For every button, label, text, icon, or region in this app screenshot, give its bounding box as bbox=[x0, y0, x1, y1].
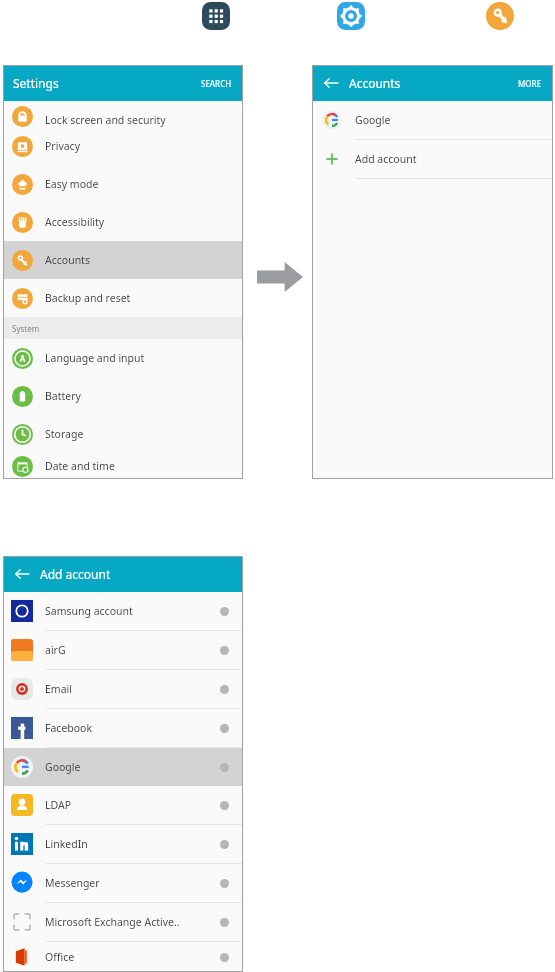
staticText: System bbox=[12, 323, 40, 334]
button[interactable]: airG bbox=[3, 631, 243, 670]
staticText: Samsung account bbox=[45, 604, 214, 618]
staticText: Storage bbox=[45, 427, 84, 441]
staticText: Lock screen and security bbox=[45, 113, 166, 127]
button[interactable]: Battery bbox=[3, 377, 243, 415]
staticText: Accessibility bbox=[45, 215, 105, 229]
button[interactable]: Email bbox=[3, 670, 243, 709]
button[interactable]: Apps bbox=[202, 2, 230, 30]
button[interactable]: Settings bbox=[337, 2, 365, 30]
button[interactable]: Accounts bbox=[3, 241, 243, 279]
staticText: LDAP bbox=[45, 798, 214, 812]
button[interactable]: Accounts bbox=[486, 2, 514, 30]
staticText: SEARCH bbox=[201, 78, 232, 89]
staticText: Privacy bbox=[45, 139, 81, 153]
button[interactable]: LinkedIn bbox=[3, 825, 243, 864]
staticText: Accounts bbox=[349, 75, 401, 91]
staticText: Date and time bbox=[45, 459, 115, 473]
staticText: MORE bbox=[518, 78, 542, 89]
staticText: Backup and reset bbox=[45, 291, 131, 305]
button[interactable]: Google bbox=[3, 748, 243, 786]
staticText: Settings bbox=[13, 75, 59, 91]
staticText: Microsoft Exchange Active.. bbox=[45, 915, 214, 929]
button[interactable]: LDAP bbox=[3, 786, 243, 825]
staticText: Accounts bbox=[45, 253, 90, 267]
staticText: Office bbox=[45, 950, 214, 964]
staticText: Easy mode bbox=[45, 177, 99, 191]
button[interactable]: Lock screen and security bbox=[3, 101, 243, 127]
staticText: Messenger bbox=[45, 876, 214, 890]
button[interactable]: Back bbox=[322, 74, 340, 92]
button[interactable]: Language and input bbox=[3, 339, 243, 377]
button[interactable]: Add account bbox=[312, 140, 553, 179]
staticText: Email bbox=[45, 682, 214, 696]
button[interactable]: Back bbox=[13, 565, 31, 583]
staticText: Facebook bbox=[45, 721, 214, 735]
button[interactable]: Samsung account bbox=[3, 592, 243, 631]
button[interactable]: Messenger bbox=[3, 864, 243, 903]
button[interactable]: Privacy bbox=[3, 127, 243, 165]
button[interactable]: Storage bbox=[3, 415, 243, 453]
button[interactable]: MORE bbox=[516, 76, 544, 91]
staticText: Add account bbox=[355, 152, 417, 166]
button[interactable]: Microsoft Exchange Active.. bbox=[3, 903, 243, 942]
staticText: Google bbox=[45, 760, 214, 774]
button[interactable]: Google bbox=[312, 101, 553, 140]
button[interactable]: Date and time bbox=[3, 453, 243, 479]
staticText: Google bbox=[355, 113, 391, 127]
button[interactable]: Facebook bbox=[3, 709, 243, 748]
staticText: LinkedIn bbox=[45, 837, 214, 851]
button[interactable]: SEARCH bbox=[199, 76, 234, 91]
button[interactable]: Backup and reset bbox=[3, 279, 243, 317]
staticText: Language and input bbox=[45, 351, 145, 365]
staticText: airG bbox=[45, 643, 214, 657]
button[interactable]: Easy mode bbox=[3, 165, 243, 203]
staticText: Battery bbox=[45, 389, 81, 403]
staticText: Add account bbox=[40, 566, 111, 582]
button[interactable]: Office bbox=[3, 942, 243, 972]
button[interactable]: Accessibility bbox=[3, 203, 243, 241]
